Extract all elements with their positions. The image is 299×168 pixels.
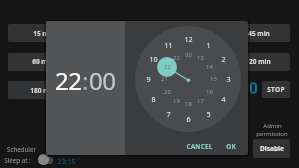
staticText: 2 <box>221 54 226 64</box>
staticText: 12 <box>184 34 193 44</box>
staticText: 5 <box>206 109 211 119</box>
staticText: 22 <box>164 63 171 71</box>
staticText: 23:15 <box>57 156 76 165</box>
button[interactable] <box>240 53 290 71</box>
staticText: 15 <box>210 75 217 83</box>
staticText: 7 <box>166 109 171 119</box>
button[interactable] <box>8 53 68 71</box>
button[interactable] <box>157 57 177 77</box>
staticText: 13 <box>197 54 204 62</box>
staticText: 00 <box>89 64 116 97</box>
button[interactable] <box>262 81 290 98</box>
staticText: Disable <box>260 144 284 153</box>
staticText: CANCEL <box>186 142 213 151</box>
staticText: 180 min <box>30 86 56 95</box>
staticText: 1 <box>206 40 211 50</box>
staticText: 19 <box>173 97 180 105</box>
staticText: 15 min <box>33 29 55 38</box>
staticText: 11 <box>164 40 173 50</box>
button[interactable]: OK <box>223 141 239 151</box>
staticText: 9 <box>146 74 151 84</box>
staticText: permission <box>256 130 288 138</box>
staticText: Sleep at : <box>4 156 31 164</box>
staticText: OK <box>226 142 236 151</box>
button[interactable] <box>8 81 68 99</box>
staticText: 4 <box>221 94 226 104</box>
button[interactable] <box>8 24 68 42</box>
staticText: 6 <box>186 114 191 124</box>
staticText: 10 <box>149 54 158 64</box>
staticText: 45 min <box>248 29 270 38</box>
staticText: 17 <box>197 97 204 105</box>
staticText: 21 <box>161 75 168 83</box>
staticText: 120 min <box>245 57 271 66</box>
staticText: 0 <box>249 77 258 96</box>
staticText: 18 <box>185 100 192 108</box>
staticText: : <box>82 64 89 97</box>
staticText: 20 <box>164 88 171 96</box>
button[interactable] <box>253 139 290 158</box>
staticText: Scheduler <box>7 145 36 153</box>
staticText: 8 <box>151 94 156 104</box>
staticText: 00 <box>185 51 192 59</box>
staticText: 3 <box>226 74 231 84</box>
staticText: 16 <box>206 88 213 96</box>
staticText: Admin <box>263 122 282 130</box>
staticText: 14 <box>206 63 213 71</box>
staticText: 23 <box>173 54 180 62</box>
staticText: STOP <box>267 85 285 94</box>
button[interactable] <box>240 24 290 42</box>
button[interactable] <box>38 157 53 164</box>
staticText: 22 <box>55 64 82 97</box>
staticText: 60 min <box>32 57 54 66</box>
button[interactable]: CANCEL <box>184 141 214 151</box>
